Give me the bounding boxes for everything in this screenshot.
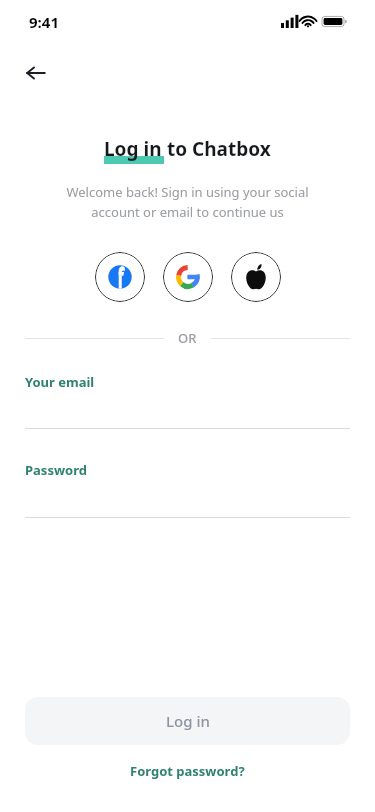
staticText: Log in bbox=[104, 136, 162, 162]
button[interactable]: Back bbox=[18, 55, 54, 91]
button[interactable]: Sign in with Facebook bbox=[95, 252, 145, 302]
staticText: Your email bbox=[25, 373, 95, 391]
staticText: OR bbox=[178, 329, 197, 347]
staticText: to Chatbox bbox=[162, 136, 271, 162]
button[interactable]: Sign in with Google bbox=[163, 252, 213, 302]
staticText: Password bbox=[25, 461, 87, 479]
button[interactable]: Log in bbox=[25, 697, 350, 745]
button[interactable]: Forgot password? bbox=[120, 760, 255, 782]
staticText: Welcome back! Sign in using your social … bbox=[42, 183, 333, 221]
button[interactable]: Password bbox=[25, 453, 350, 521]
staticText: 9:41 bbox=[29, 12, 59, 32]
staticText: Forgot password? bbox=[130, 762, 245, 780]
staticText: Log in bbox=[166, 711, 210, 731]
button[interactable]: Sign in with Apple bbox=[231, 252, 281, 302]
button[interactable]: Your email bbox=[25, 365, 350, 432]
